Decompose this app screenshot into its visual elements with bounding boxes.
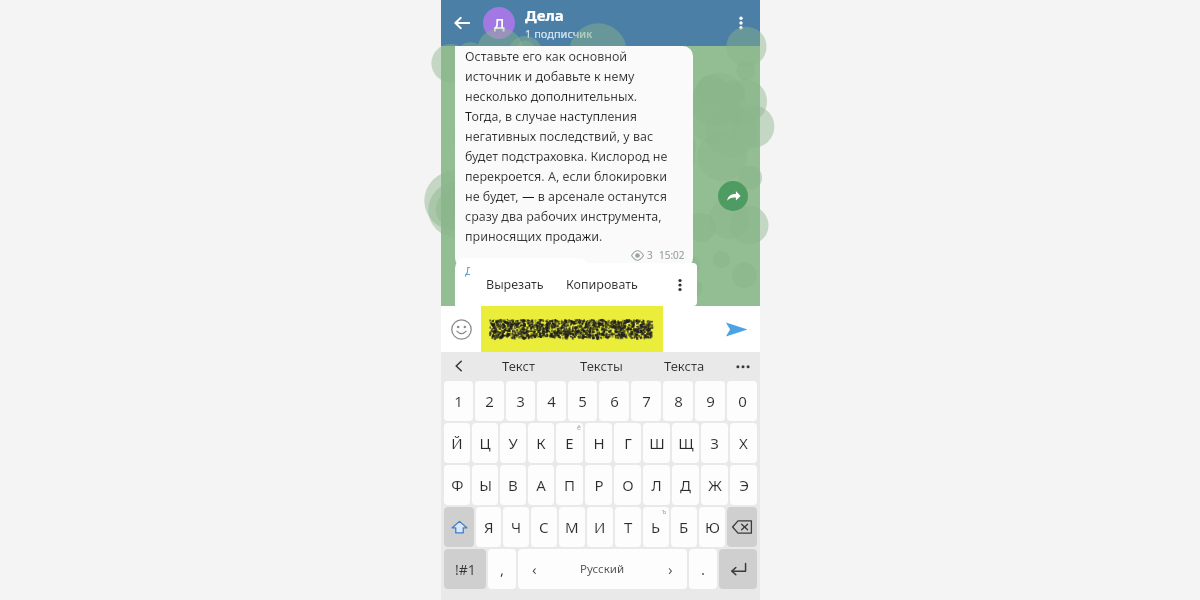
staticText: перекроется. А, если блокировки xyxy=(465,168,667,185)
staticText: Русский xyxy=(580,561,625,577)
staticText: Ы xyxy=(479,475,492,495)
button[interactable]: Е xyxy=(556,423,583,463)
button[interactable]: С xyxy=(531,507,557,547)
button[interactable]: П xyxy=(556,465,583,505)
staticText: 0 xyxy=(738,391,747,411)
staticText: Р xyxy=(594,475,604,495)
staticText: Ь xyxy=(651,517,661,537)
button[interactable]: Т xyxy=(615,507,641,547)
staticText: Копировать xyxy=(566,276,638,293)
button[interactable]: Д xyxy=(672,465,699,505)
button[interactable]: 0 xyxy=(727,381,757,421)
button[interactable]: Я xyxy=(476,507,501,547)
button[interactable]: К xyxy=(528,423,554,463)
button[interactable]: Текст xyxy=(477,352,560,380)
staticText: Д xyxy=(494,14,505,33)
staticText: Ю xyxy=(705,517,720,537)
button[interactable]: Ц xyxy=(472,423,498,463)
button[interactable]: 8 xyxy=(663,381,693,421)
staticText: Э xyxy=(739,475,749,495)
button[interactable]: 3 xyxy=(506,381,535,421)
button[interactable]: More suggestions xyxy=(726,352,760,380)
staticText: А xyxy=(536,475,546,495)
button[interactable]: Enter xyxy=(719,549,757,589)
staticText: не будет, — в арсенале останутся xyxy=(465,188,667,205)
button[interactable]: Г xyxy=(614,423,641,463)
button[interactable]: 6 xyxy=(599,381,629,421)
button[interactable]: 7 xyxy=(631,381,661,421)
button[interactable]: Б xyxy=(671,507,697,547)
staticText: У xyxy=(508,433,518,453)
button[interactable]: Forward xyxy=(718,181,748,211)
button[interactable] xyxy=(481,306,712,352)
button[interactable]: 9 xyxy=(695,381,725,421)
button[interactable]: Д xyxy=(483,7,515,39)
button[interactable]: 4 xyxy=(537,381,566,421)
button[interactable]: Ы xyxy=(472,465,498,505)
staticText: Тексты xyxy=(580,357,623,375)
button[interactable]: Вырезать xyxy=(486,276,544,293)
button[interactable]: Backspace xyxy=(727,507,757,547)
button[interactable]: 2 xyxy=(475,381,504,421)
button[interactable]: Ш xyxy=(643,423,670,463)
button[interactable]: 1 xyxy=(444,381,473,421)
button[interactable]: У xyxy=(500,423,526,463)
button[interactable]: ‹ xyxy=(518,549,687,589)
button[interactable]: Send xyxy=(712,306,760,352)
button[interactable]: Ж xyxy=(701,465,728,505)
button[interactable]: More xyxy=(663,263,697,306)
button[interactable]: В xyxy=(500,465,526,505)
button[interactable]: . xyxy=(689,549,717,589)
staticText: Й xyxy=(451,433,463,453)
staticText: негативных последствий, у вас xyxy=(465,128,654,145)
button[interactable]: Й xyxy=(444,423,470,463)
staticText: 29 марта xyxy=(576,279,625,294)
staticText: Ч xyxy=(511,517,522,537)
staticText: П xyxy=(564,475,575,495)
staticText: Дела xyxy=(525,5,564,25)
button[interactable]: Тексты xyxy=(560,352,643,380)
button[interactable]: Р xyxy=(585,465,612,505)
staticText: !#1 xyxy=(455,560,476,579)
staticText: 3 xyxy=(516,391,525,411)
staticText: С xyxy=(539,517,549,537)
button[interactable]: М xyxy=(559,507,585,547)
button[interactable]: Previous suggestions xyxy=(441,352,477,380)
staticText: Ж xyxy=(708,475,722,495)
staticText: 1 xyxy=(454,391,463,411)
button[interactable]: Э xyxy=(730,465,757,505)
button[interactable]: Копировать xyxy=(566,276,638,293)
staticText: В xyxy=(508,475,518,495)
button[interactable]: Ф xyxy=(444,465,470,505)
button[interactable]: Emoji xyxy=(441,306,481,352)
button[interactable]: !#1 xyxy=(444,549,486,589)
button[interactable]: Л xyxy=(643,465,670,505)
staticText: 8 xyxy=(674,391,683,411)
staticText: Т xyxy=(624,517,633,537)
button[interactable]: Back xyxy=(441,0,483,46)
button[interactable]: Shift xyxy=(444,507,474,547)
button[interactable]: Ю xyxy=(699,507,725,547)
button[interactable]: Щ xyxy=(672,423,699,463)
button[interactable]: Оставьте его как основной xyxy=(455,46,693,268)
staticText: будет подстраховка. Кислород не xyxy=(465,148,668,165)
button[interactable]: И xyxy=(587,507,613,547)
staticText: К xyxy=(536,433,546,453)
staticText: Вырезать xyxy=(486,276,544,293)
button[interactable]: Х xyxy=(730,423,757,463)
staticText: Текст xyxy=(502,357,535,375)
button[interactable]: Н xyxy=(585,423,612,463)
button[interactable]: 5 xyxy=(568,381,597,421)
button[interactable]: Ч xyxy=(503,507,529,547)
staticText: Х xyxy=(739,433,748,453)
button[interactable]: Ь xyxy=(643,507,669,547)
button[interactable]: More options xyxy=(722,0,760,46)
button[interactable]: А xyxy=(528,465,554,505)
button[interactable]: Текста xyxy=(643,352,726,380)
staticText: 6 xyxy=(610,391,619,411)
staticText: Я xyxy=(484,517,494,537)
staticText: 1 подписчик xyxy=(525,26,592,41)
button[interactable]: , xyxy=(488,549,516,589)
button[interactable]: З xyxy=(701,423,728,463)
button[interactable]: О xyxy=(614,465,641,505)
